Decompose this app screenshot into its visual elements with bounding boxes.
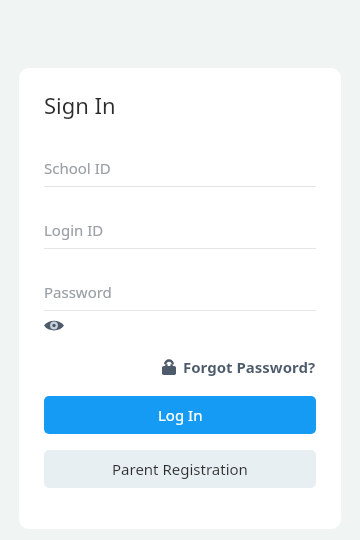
button[interactable]: School ID xyxy=(44,158,316,187)
button[interactable]: Log In xyxy=(44,396,316,434)
button[interactable]: Password xyxy=(44,282,316,311)
staticText: Log In xyxy=(158,405,203,425)
staticText: Forgot Password? xyxy=(183,357,316,377)
staticText: Login ID xyxy=(44,220,104,240)
staticText: School ID xyxy=(44,158,111,178)
staticText: Sign In xyxy=(44,90,116,120)
button[interactable]: Login ID xyxy=(44,220,316,249)
button[interactable]: Forgot Password? xyxy=(162,354,316,380)
staticText: Parent Registration xyxy=(112,459,248,479)
button[interactable]: Show password xyxy=(44,315,70,335)
button[interactable]: Parent Registration xyxy=(44,450,316,488)
staticText: Password xyxy=(44,282,112,302)
